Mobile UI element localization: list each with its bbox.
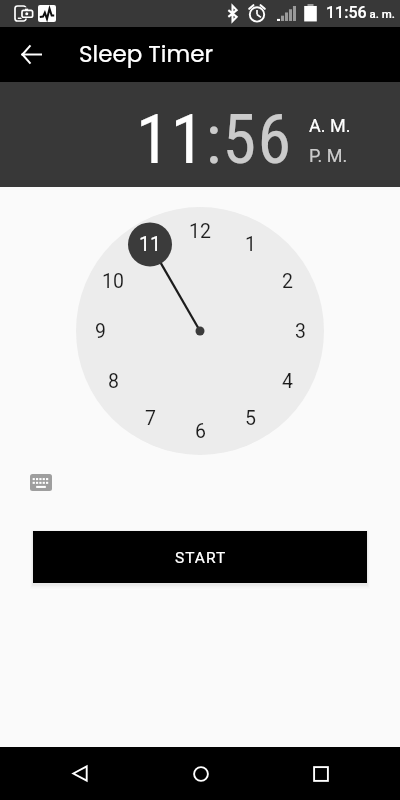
- button[interactable]: 12: [182, 218, 218, 244]
- staticText: 11:56 a. m.: [326, 3, 395, 22]
- button[interactable]: 5: [232, 405, 268, 431]
- staticText: Sleep Timer: [79, 38, 213, 70]
- staticText: 8: [108, 370, 119, 393]
- button[interactable]: Home: [175, 748, 226, 799]
- staticText: 5: [245, 407, 256, 430]
- button[interactable]: 3: [282, 318, 318, 344]
- button[interactable]: 7: [132, 405, 168, 431]
- staticText: 11: [139, 233, 161, 256]
- button[interactable]: Navigate up: [14, 37, 48, 71]
- button[interactable]: P. M.: [309, 145, 348, 166]
- button[interactable]: 8: [95, 368, 131, 394]
- staticText: 10: [102, 270, 124, 293]
- staticText: START: [175, 549, 227, 567]
- button[interactable]: 10: [95, 268, 131, 294]
- button[interactable]: 2: [269, 268, 305, 294]
- button[interactable]: Recent apps: [295, 748, 346, 799]
- button[interactable]: 11: [132, 231, 168, 257]
- staticText: 3: [295, 320, 306, 343]
- button[interactable]: A. M.: [309, 115, 351, 136]
- staticText: 2: [282, 270, 293, 293]
- button[interactable]: Switch to text input mode: [25, 466, 57, 498]
- staticText: 4: [282, 370, 293, 393]
- staticText: 7: [145, 407, 156, 430]
- staticText: 1: [245, 233, 256, 256]
- button[interactable]: 9: [82, 318, 118, 344]
- button[interactable]: 4: [269, 368, 305, 394]
- staticText: 12: [189, 220, 211, 243]
- other: Clock hour picker: [0, 0, 400, 800]
- button[interactable]: START: [33, 531, 367, 583]
- button[interactable]: 6: [182, 418, 218, 444]
- button[interactable]: 11:56: [136, 100, 293, 180]
- staticText: 9: [95, 320, 106, 343]
- button[interactable]: Back: [54, 748, 105, 799]
- button[interactable]: 1: [232, 231, 268, 257]
- staticText: 6: [195, 420, 206, 443]
